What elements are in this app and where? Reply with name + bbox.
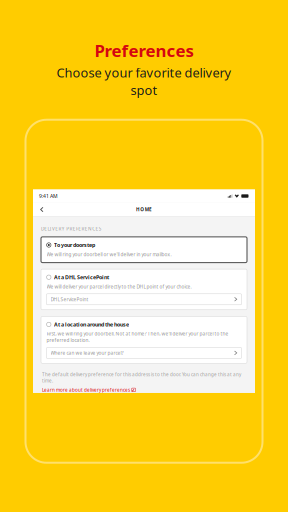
staticText: At a DHL ServicePoint (54, 274, 109, 281)
staticText: DELIVERY PREFERENCES (41, 225, 102, 232)
staticText: At a location around the house (54, 321, 129, 328)
button[interactable]: Back (33, 204, 255, 215)
staticText: The default delivery preference for this… (42, 371, 241, 384)
staticText: Where can we leave your parcel? (50, 350, 123, 356)
button[interactable]: To your doorstep (33, 237, 255, 263)
button[interactable]: Learn more about delivery preferences (42, 387, 136, 393)
staticText: Choose your favorite delivery (56, 64, 231, 81)
staticText: Preferences (94, 39, 193, 62)
staticText: First, we will ring your doorbell. Not a… (46, 331, 228, 343)
staticText: We will deliver your parcel directly to … (46, 283, 191, 290)
button[interactable]: At a DHL ServicePoint (33, 269, 255, 310)
staticText: We will ring your doorbell or we'll deli… (46, 251, 171, 257)
staticText: HOME (136, 206, 152, 213)
staticText: To your doorstep (54, 241, 95, 249)
button[interactable]: At a location around the house (33, 316, 255, 363)
staticText: 9:41 AM (39, 193, 58, 199)
staticText: DHL ServicePoint (50, 296, 88, 302)
staticText: Learn more about delivery preferences (42, 387, 130, 393)
staticText: spot (130, 81, 157, 99)
